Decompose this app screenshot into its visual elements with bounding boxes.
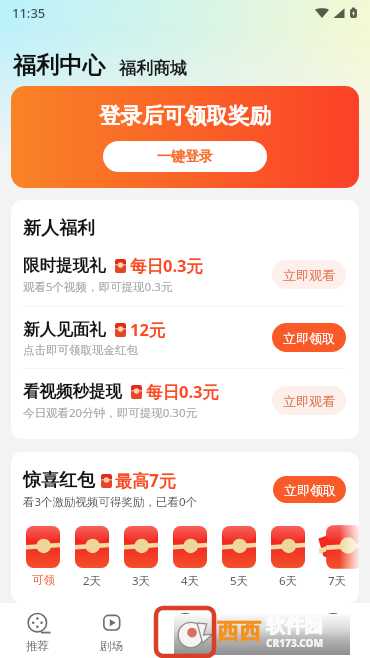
button[interactable]: 福利商城 <box>119 58 187 79</box>
button[interactable]: 一键登录 <box>103 141 267 172</box>
button[interactable]: 立即领取 <box>272 323 346 352</box>
staticText: 一键登录 <box>157 148 213 166</box>
staticText: 新人见面礼 <box>23 319 106 340</box>
staticText: CR173.COM <box>266 636 324 650</box>
button[interactable]: 追剧 <box>222 608 296 653</box>
staticText: 立即观看 <box>283 393 335 409</box>
staticText: 福利中心 <box>13 51 105 80</box>
staticText: 我的 <box>322 639 345 653</box>
staticText: 新人福利 <box>23 217 95 240</box>
staticText: 福利商城 <box>119 58 187 79</box>
staticText: 立即领取 <box>283 330 335 346</box>
staticText: 福利 <box>174 639 197 653</box>
staticText: 西西 <box>217 618 261 646</box>
button[interactable]: 福利中心 <box>13 51 105 80</box>
staticText: 12元 <box>130 318 166 341</box>
staticText: 4天 <box>181 573 200 589</box>
button[interactable]: 剧场 <box>74 608 148 653</box>
button[interactable]: 5天 <box>222 526 256 589</box>
staticText: 11:35 <box>12 4 46 22</box>
staticText: 每日0.3元 <box>146 380 220 403</box>
button[interactable]: 登录后可领取奖励 <box>11 86 359 188</box>
staticText: 今日观看20分钟，即可提现0.30元 <box>23 405 197 421</box>
staticText: 可领 <box>32 573 55 587</box>
staticText: 剧场 <box>100 639 123 653</box>
staticText: 2天 <box>83 573 102 589</box>
staticText: 限时提现礼 <box>23 255 106 276</box>
staticText: 推荐 <box>26 639 49 653</box>
staticText: 立即领取 <box>284 482 336 498</box>
button[interactable]: 我的 <box>296 608 370 653</box>
button[interactable]: 立即观看 <box>272 386 346 415</box>
button[interactable]: 7天 <box>320 526 354 589</box>
staticText: 立即观看 <box>283 267 335 283</box>
staticText: 看视频秒提现 <box>23 381 122 402</box>
button[interactable]: 4天 <box>173 526 207 589</box>
staticText: 5天 <box>230 573 249 589</box>
button[interactable]: 可领 <box>26 526 60 587</box>
staticText: 观看5个视频，即可提现0.3元 <box>23 279 173 295</box>
staticText: 惊喜红包 <box>23 469 95 492</box>
staticText: 最高7元 <box>115 469 176 492</box>
staticText: 每日0.3元 <box>130 254 204 277</box>
staticText: 看3个激励视频可得奖励，已看0个 <box>23 494 198 510</box>
staticText: 追剧 <box>248 639 271 653</box>
button[interactable]: 立即领取 <box>273 476 346 503</box>
button[interactable]: 3天 <box>124 526 158 589</box>
staticText: 3天 <box>132 573 151 589</box>
staticText: 7天 <box>328 573 347 589</box>
staticText: 点击即可领取现金红包 <box>23 343 138 357</box>
button[interactable]: 2天 <box>75 526 109 589</box>
staticText: 登录后可领取奖励 <box>99 102 271 129</box>
staticText: 6天 <box>279 573 298 589</box>
button[interactable]: 推荐 <box>0 608 74 653</box>
button[interactable]: 6天 <box>271 526 305 589</box>
staticText: 软件园 <box>266 614 323 638</box>
button[interactable]: 立即观看 <box>272 260 346 289</box>
button[interactable]: 福利 <box>148 608 222 653</box>
